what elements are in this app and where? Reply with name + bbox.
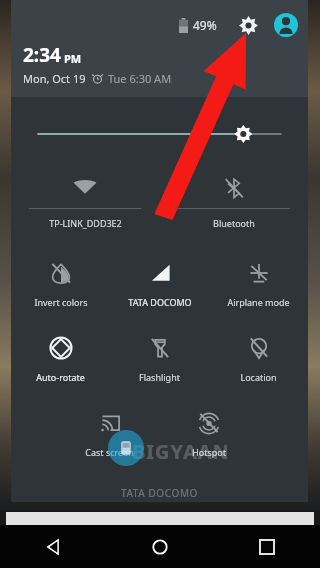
staticText: Location: [240, 371, 277, 383]
staticText: 49%: [193, 17, 217, 33]
staticText: Invert colors: [34, 296, 88, 308]
button[interactable]: TP-LINK_DDD3E2: [11, 167, 159, 243]
staticText: Cast screen: [85, 446, 134, 458]
button[interactable]: Location: [209, 318, 308, 393]
staticText: 2:34: [23, 42, 61, 68]
button[interactable]: Airplane mode: [209, 243, 308, 318]
button[interactable]: Auto-rotate: [11, 318, 110, 393]
button[interactable]: User profile: [274, 13, 298, 37]
staticText: Airplane mode: [227, 296, 290, 308]
button[interactable]: Invert colors: [11, 243, 110, 318]
staticText: Hotspot: [192, 446, 226, 458]
staticText: Bluetooth: [213, 217, 255, 229]
staticText: TP-LINK_DDD3E2: [49, 217, 122, 229]
button[interactable]: 2:34: [23, 42, 172, 86]
button[interactable]: Settings: [235, 12, 261, 38]
button[interactable]: Flashlight: [110, 318, 209, 393]
button[interactable]: TATA DOCOMO: [110, 243, 209, 318]
button[interactable]: Hotspot: [159, 393, 258, 468]
staticText: PM: [64, 51, 82, 66]
button[interactable]: Home: [106, 525, 213, 568]
staticText: BIGYAAN: [132, 438, 230, 465]
staticText: Mon, Oct 19: [23, 71, 86, 86]
button[interactable]: Back: [0, 525, 106, 568]
button[interactable]: Recent apps: [213, 525, 320, 568]
staticText: Auto-rotate: [36, 371, 85, 383]
button[interactable]: Bluetooth: [159, 167, 308, 243]
staticText: TATA DOCOMO: [121, 486, 198, 500]
staticText: Tue 6:30 AM: [108, 71, 172, 86]
button[interactable]: Brightness: [11, 123, 308, 145]
staticText: TATA DOCOMO: [128, 296, 192, 308]
button[interactable]: Cast screen: [60, 393, 159, 468]
staticText: Flashlight: [139, 371, 180, 383]
